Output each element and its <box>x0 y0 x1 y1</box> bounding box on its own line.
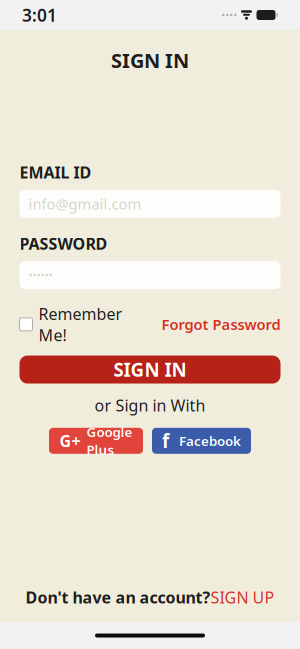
staticText: Remember Me! <box>38 303 122 346</box>
staticText: SIGN IN <box>111 47 189 74</box>
staticText: Google Plus <box>86 423 132 458</box>
staticText: PASSWORD <box>19 233 107 254</box>
staticText: Forgot Password <box>161 315 280 334</box>
staticText: 3:01 <box>22 3 57 26</box>
staticText: SIGN IN <box>113 357 186 382</box>
staticText: G+ <box>59 430 80 451</box>
button[interactable]: SIGN IN <box>19 356 280 384</box>
staticText: or Sign in With <box>94 395 205 416</box>
staticText: EMAIL ID <box>19 162 91 183</box>
button[interactable]: Remember Me! <box>19 303 122 346</box>
button[interactable]: f <box>152 428 251 454</box>
button[interactable]: G+ <box>49 428 143 454</box>
staticText: Don't have an account? <box>25 587 210 608</box>
staticText: info@gmail.com <box>28 194 141 214</box>
staticText: Facebook <box>179 432 241 450</box>
staticText: SIGN UP <box>210 587 274 608</box>
button[interactable]: SIGN UP <box>210 587 274 608</box>
staticText: •••••• <box>28 268 52 282</box>
staticText: f <box>162 428 169 453</box>
button[interactable]: Forgot Password <box>161 315 280 334</box>
